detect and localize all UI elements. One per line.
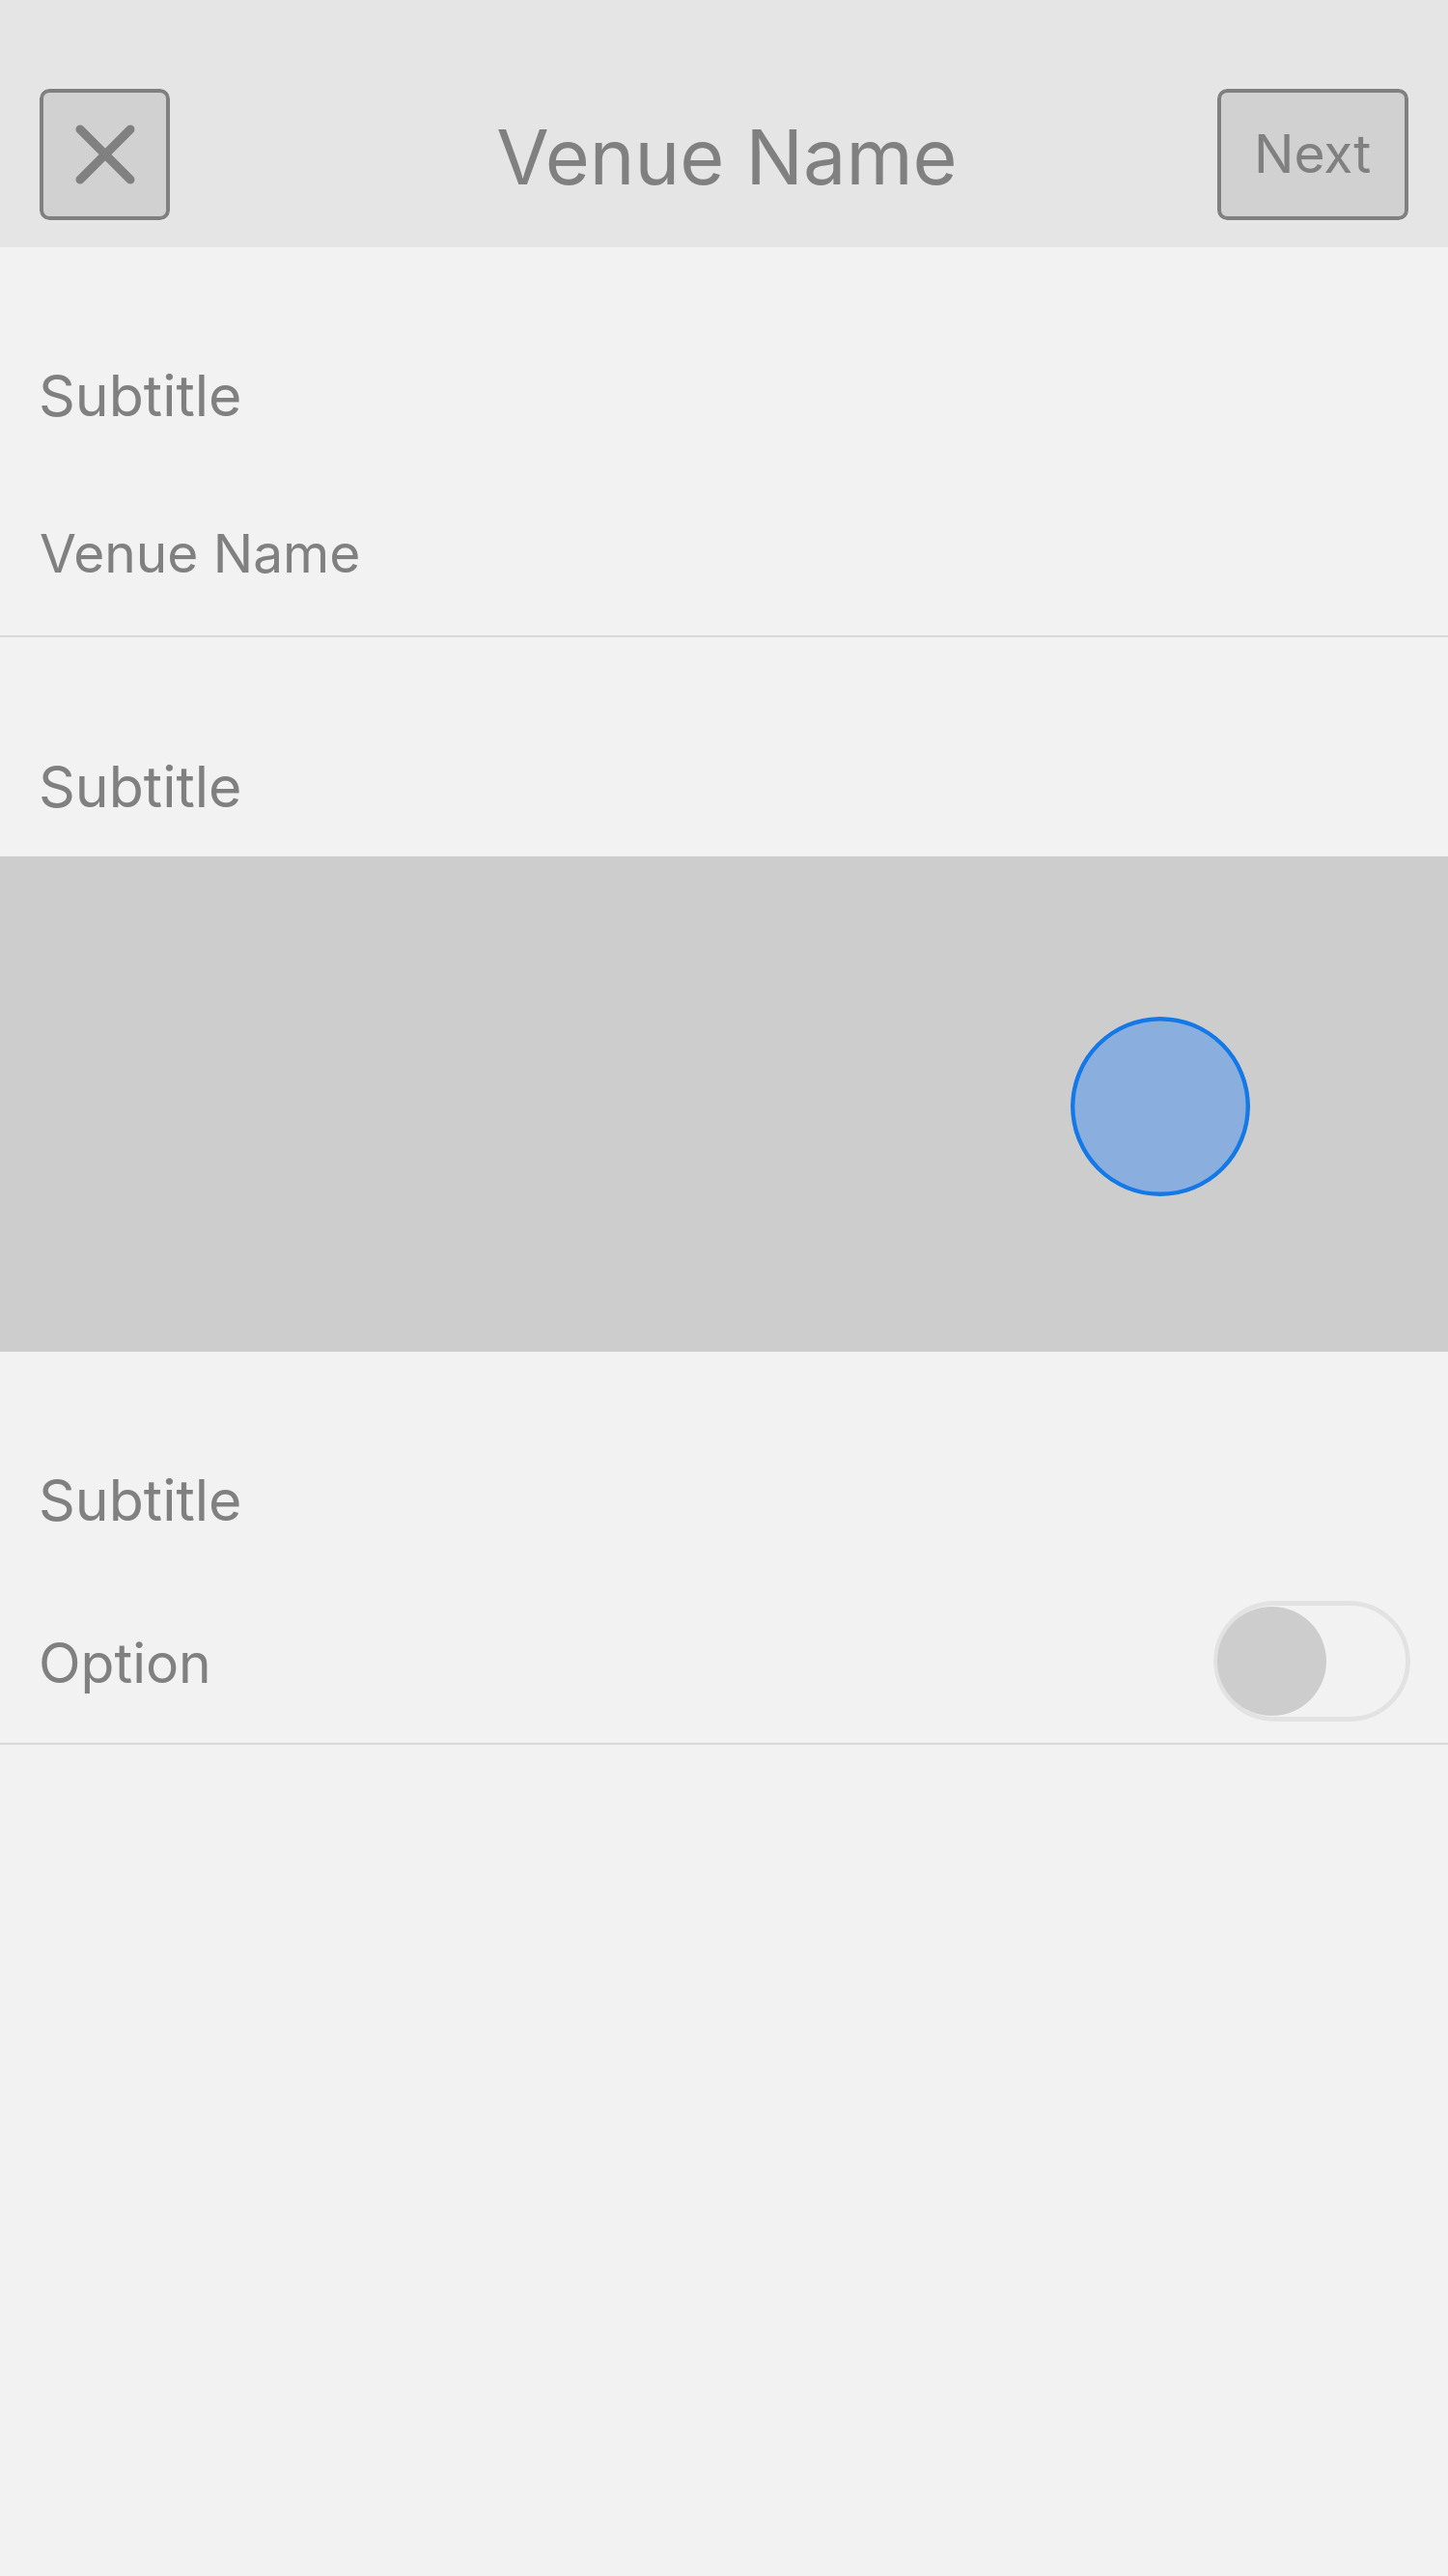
staticText: Next	[1254, 122, 1372, 186]
staticText: Venue Name	[3, 110, 1448, 203]
button[interactable]: Next	[1217, 89, 1408, 220]
staticText: Subtitle	[39, 1466, 242, 1534]
button[interactable]: Option switch, off	[1213, 1601, 1410, 1722]
staticText: Subtitle	[39, 361, 242, 430]
staticText: Option	[39, 1630, 211, 1696]
staticText: Venue Name	[40, 521, 361, 586]
button[interactable]: Add photo	[1071, 1017, 1250, 1196]
staticText: Subtitle	[39, 752, 242, 821]
button[interactable]: Close	[40, 89, 170, 220]
button[interactable]: Cover image	[0, 856, 1448, 1352]
